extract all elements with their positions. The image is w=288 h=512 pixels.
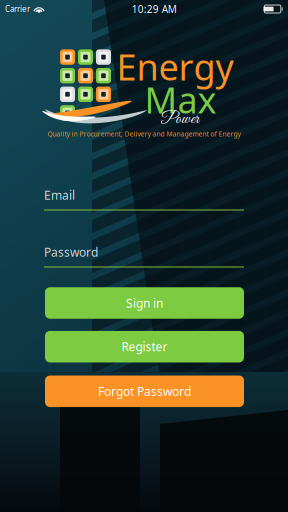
staticText: Quality in Procurement, Delivery and Man… [47,129,240,139]
button[interactable]: Register [45,331,244,362]
staticText: Max [144,75,216,124]
staticText: Power [160,108,198,130]
staticText: Password [44,244,98,260]
button[interactable]: Sign in [45,287,244,319]
button[interactable]: Forgot Password [45,376,244,407]
staticText: Carrier [5,4,30,14]
staticText: Forgot Password [98,383,191,399]
staticText: 10:29 AM [132,2,177,16]
staticText: Email [44,187,75,203]
staticText: Register [121,338,167,355]
staticText: Energy [116,42,233,91]
staticText: Sign in [126,295,163,311]
